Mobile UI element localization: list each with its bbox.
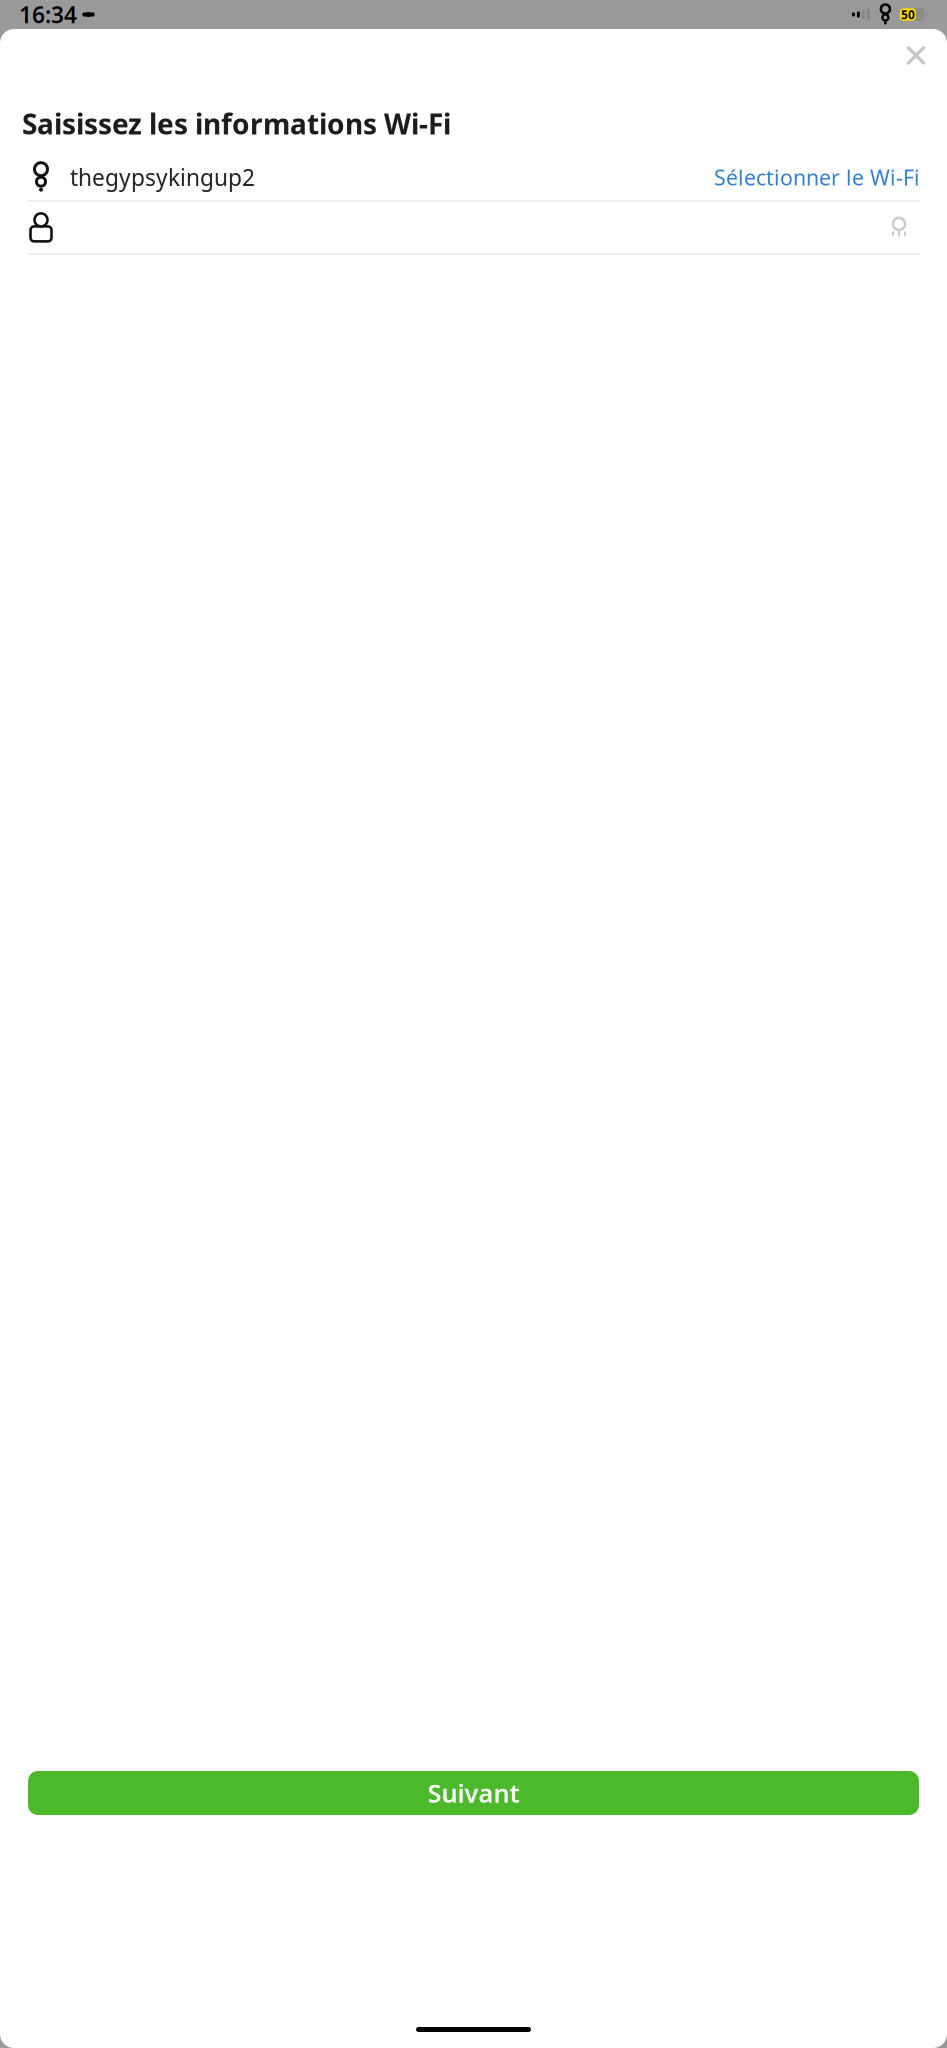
staticText: 16:34 bbox=[19, 0, 77, 29]
button[interactable]: Suivant bbox=[28, 1771, 919, 1815]
staticText: Sélectionner le Wi-Fi bbox=[714, 163, 920, 191]
button[interactable]: thegypsykingup2 bbox=[0, 154, 947, 200]
button[interactable]: Fermer bbox=[893, 33, 939, 79]
staticText: Suivant bbox=[427, 1776, 519, 1810]
staticText: ✕ bbox=[902, 37, 930, 75]
staticText: 50 bbox=[901, 6, 915, 22]
staticText: thegypsykingup2 bbox=[70, 162, 255, 192]
staticText: Saisissez les informations Wi-Fi bbox=[22, 105, 451, 142]
button[interactable]: Afficher le mot de passe bbox=[878, 206, 920, 248]
